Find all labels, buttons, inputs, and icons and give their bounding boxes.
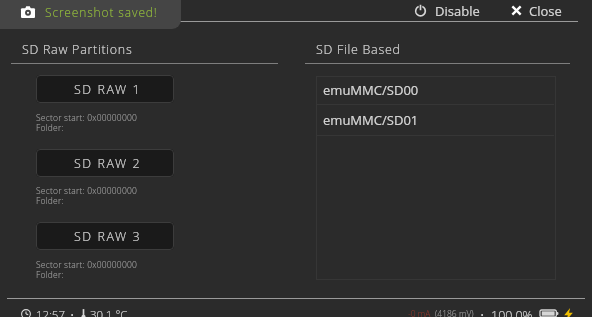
staticText: Sector start: 0x00000000 — [36, 259, 138, 271]
staticText: emuMMC/SD01 — [323, 111, 419, 129]
staticText: Folder: — [36, 195, 64, 207]
other: Close — [511, 5, 522, 16]
button[interactable]: SD RAW 1 — [36, 75, 174, 103]
staticText: 30.1 °C — [90, 307, 128, 317]
button[interactable]: SD RAW 3 — [36, 222, 174, 250]
staticText: Folder: — [36, 269, 64, 281]
staticText: SD RAW 2 — [74, 155, 142, 172]
staticText: (4186 mV) — [435, 308, 474, 317]
staticText: SD File Based — [316, 41, 401, 58]
staticText: SD RAW 1 — [74, 81, 142, 98]
staticText: 12:57 — [36, 307, 65, 317]
staticText: Folder: — [36, 122, 64, 134]
staticText: emuMMC/SD00 — [323, 81, 419, 99]
staticText: Close — [529, 2, 562, 20]
button[interactable]: emuMMC/SD00 — [316, 76, 554, 104]
staticText: • — [70, 307, 75, 317]
staticText: SD RAW 3 — [74, 228, 142, 245]
other: Disable — [414, 4, 427, 17]
staticText: Screenshot saved! — [45, 4, 158, 20]
staticText: Sector start: 0x00000000 — [36, 112, 138, 124]
staticText: -0 mA — [408, 308, 431, 317]
button[interactable]: SD RAW 2 — [36, 149, 174, 177]
staticText: 100.0% — [491, 307, 533, 317]
staticText: • — [480, 307, 485, 317]
button[interactable]: Disable — [408, 0, 486, 21]
staticText: Sector start: 0x00000000 — [36, 185, 138, 197]
staticText: SD Raw Partitions — [22, 41, 133, 58]
button[interactable]: emuMMC/SD01 — [316, 105, 554, 135]
button[interactable]: Close — [505, 0, 568, 21]
staticText: Disable — [435, 2, 480, 20]
